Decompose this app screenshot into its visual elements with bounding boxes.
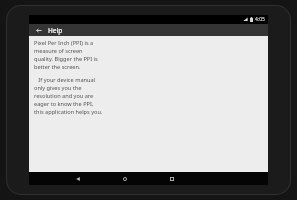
button[interactable]: Navigate up	[33, 25, 44, 36]
button[interactable]: Back	[72, 173, 83, 184]
staticText: Pixel Per Inch (PPI) is a measure of scr…	[34, 39, 101, 71]
button[interactable]: Recent apps	[166, 173, 177, 184]
staticText: Help	[48, 26, 63, 35]
button[interactable]: Home	[119, 173, 130, 184]
staticText: 4:05	[255, 16, 265, 23]
staticText: If your device manual only gives you the…	[34, 76, 104, 116]
